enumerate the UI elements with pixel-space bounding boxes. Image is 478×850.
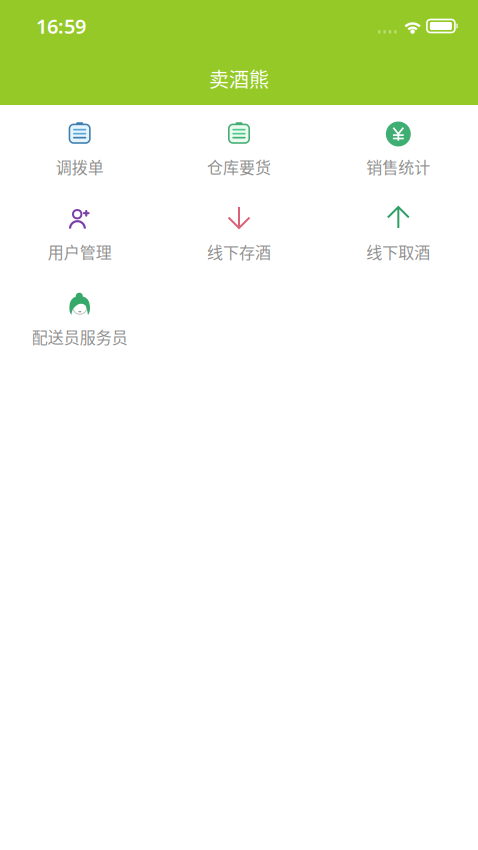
button[interactable]: 销售统计 — [319, 105, 478, 190]
staticText: 用户管理 — [48, 240, 112, 263]
button[interactable]: 用户管理 — [0, 190, 159, 275]
staticText: 线下存酒 — [207, 240, 271, 263]
button[interactable]: 线下存酒 — [159, 190, 319, 275]
button[interactable]: 线下取酒 — [319, 190, 478, 275]
button[interactable]: 配送员服务员 — [0, 275, 159, 360]
staticText: 调拨单 — [56, 155, 104, 178]
staticText: 卖酒熊 — [209, 64, 269, 93]
staticText: 16:59 — [36, 13, 86, 39]
staticText: 销售统计 — [366, 155, 430, 178]
staticText: 仓库要货 — [207, 155, 271, 178]
button[interactable]: 仓库要货 — [159, 105, 319, 190]
staticText: 配送员服务员 — [32, 325, 128, 348]
staticText: 线下取酒 — [366, 240, 430, 263]
button[interactable]: 调拨单 — [0, 105, 159, 190]
